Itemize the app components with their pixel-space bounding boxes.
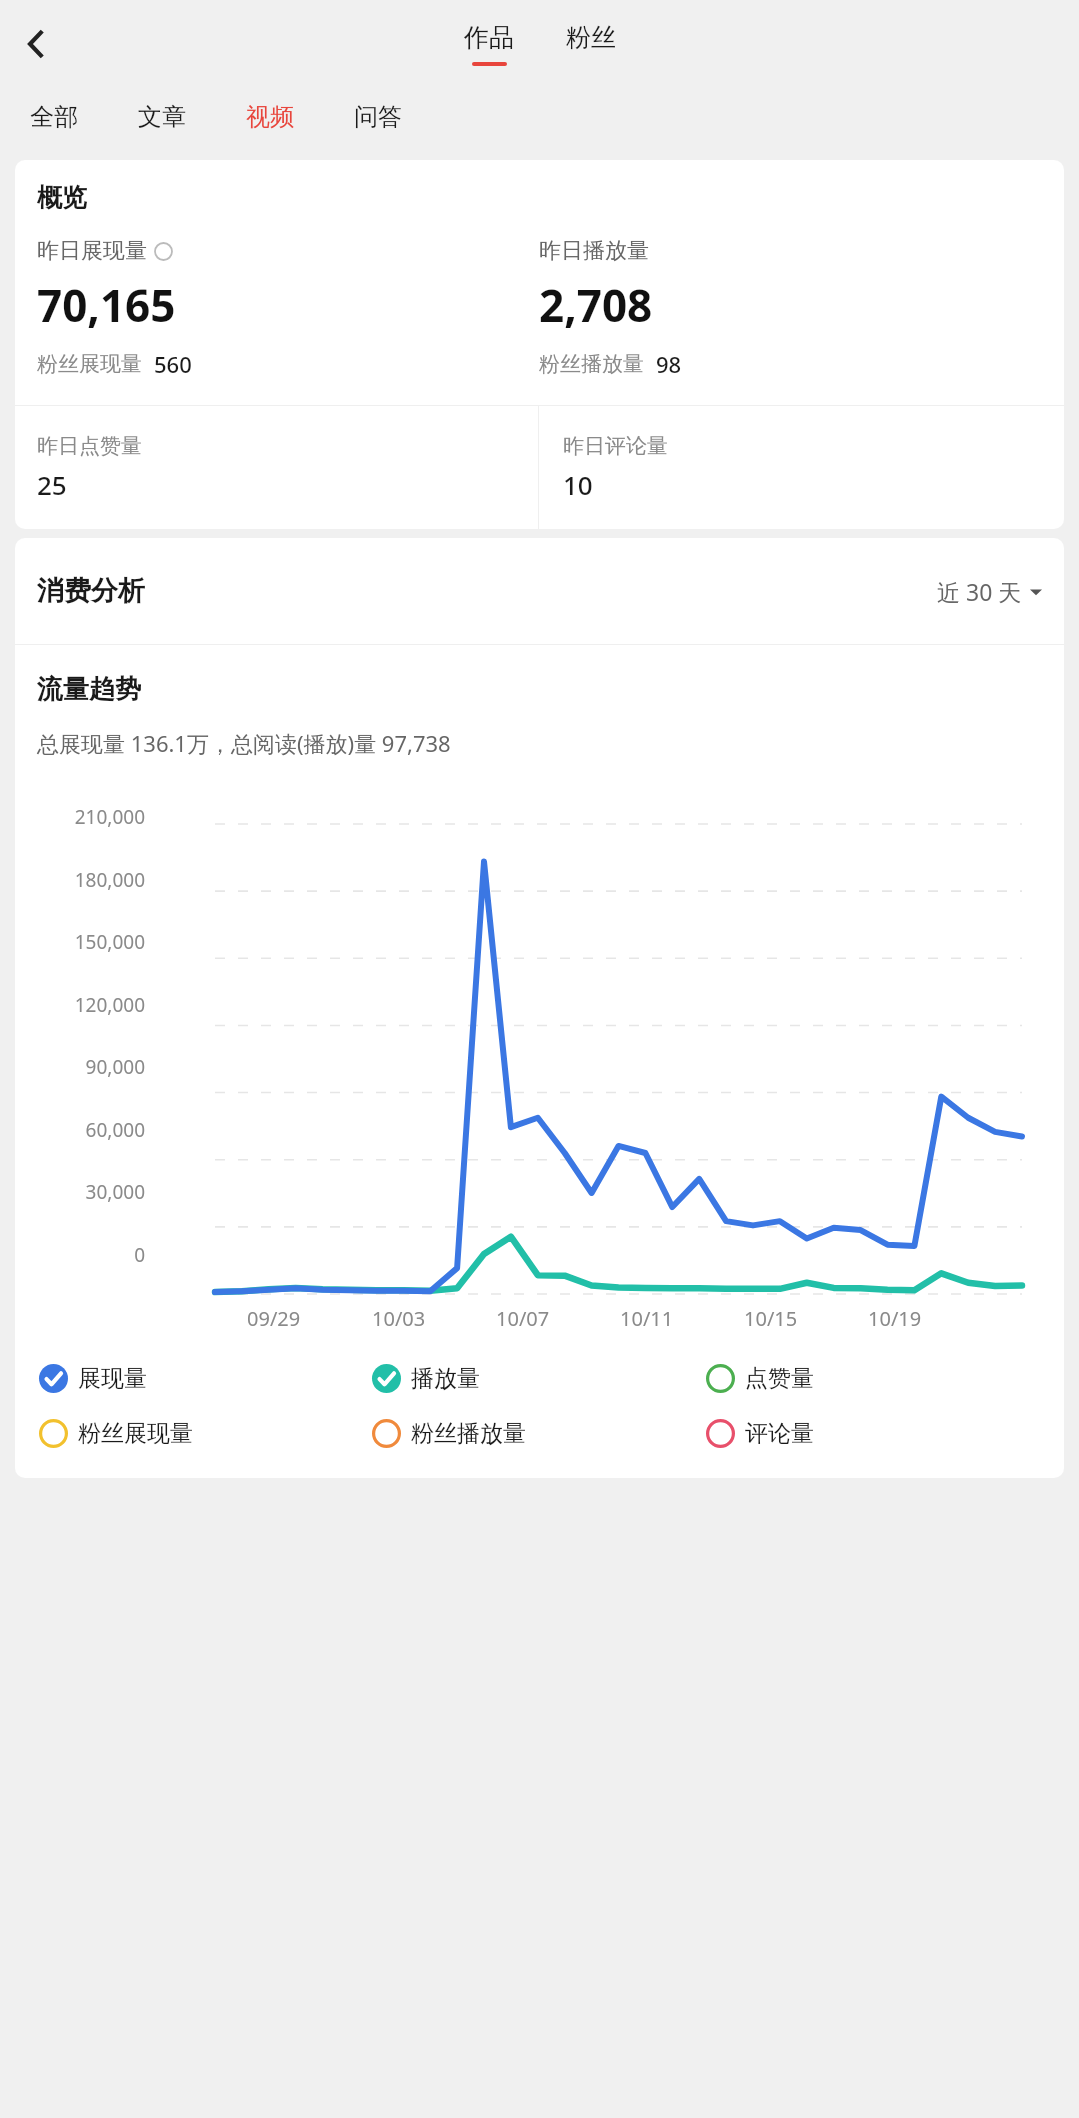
staticText: 10/11 <box>620 1305 674 1332</box>
staticText: 昨日点赞量 <box>37 433 142 459</box>
staticText: 粉丝播放量 <box>539 351 644 377</box>
button[interactable]: 粉丝展现量 <box>39 1419 372 1448</box>
staticText: 30,000 <box>85 1179 145 1205</box>
staticText: 10/07 <box>496 1305 550 1332</box>
staticText: 60,000 <box>85 1117 145 1143</box>
staticText: 10/15 <box>744 1305 798 1332</box>
staticText: 播放量 <box>411 1364 480 1393</box>
staticText: 90,000 <box>85 1054 145 1080</box>
staticText: 150,000 <box>74 929 145 955</box>
staticText: 180,000 <box>74 867 145 893</box>
button[interactable]: 播放量 <box>372 1364 706 1393</box>
staticText: 文章 <box>138 102 186 132</box>
staticText: 总展现量 136.1万，总阅读(播放)量 97,738 <box>37 728 451 758</box>
staticText: 昨日播放量 <box>539 237 649 265</box>
staticText: 10/19 <box>868 1305 922 1332</box>
staticText: 展现量 <box>78 1364 147 1393</box>
staticText: 概览 <box>37 182 87 213</box>
staticText: 2,708 <box>539 275 653 335</box>
button[interactable]: 全部 <box>26 96 82 138</box>
staticText: 10/03 <box>372 1305 426 1332</box>
staticText: 0 <box>134 1242 145 1268</box>
staticText: 流量趋势 <box>37 673 141 706</box>
button[interactable]: 问答 <box>350 96 406 138</box>
staticText: 70,165 <box>37 275 176 335</box>
staticText: 视频 <box>246 102 294 132</box>
staticText: 作品 <box>464 22 514 53</box>
staticText: 粉丝展现量 <box>78 1419 193 1448</box>
staticText: 全部 <box>30 102 78 132</box>
staticText: 25 <box>37 467 67 502</box>
button[interactable]: 粉丝 <box>556 22 626 66</box>
staticText: 粉丝播放量 <box>411 1419 526 1448</box>
button[interactable]: 展现量 <box>39 1364 372 1393</box>
staticText: 120,000 <box>74 992 145 1018</box>
button[interactable]: Back <box>6 14 66 74</box>
staticText: 消费分析 <box>37 574 145 608</box>
button[interactable]: 近 30 天 <box>937 576 1064 607</box>
button[interactable]: 点赞量 <box>706 1364 1040 1393</box>
button[interactable]: 粉丝播放量 <box>372 1419 706 1448</box>
staticText: 10 <box>563 467 593 502</box>
staticText: 粉丝展现量 <box>37 351 142 377</box>
staticText: 粉丝 <box>566 22 616 53</box>
button[interactable]: 视频 <box>242 96 298 138</box>
button[interactable]: 评论量 <box>706 1419 1040 1448</box>
staticText: 问答 <box>354 102 402 132</box>
staticText: 09/29 <box>247 1305 301 1332</box>
staticText: 210,000 <box>74 804 145 830</box>
button[interactable]: 作品 <box>454 22 524 66</box>
staticText: 昨日评论量 <box>563 433 668 459</box>
staticText: 评论量 <box>745 1419 814 1448</box>
staticText: 点赞量 <box>745 1364 814 1393</box>
staticText: 近 30 天 <box>937 576 1022 607</box>
staticText: 昨日展现量 <box>37 237 147 265</box>
button[interactable]: 文章 <box>134 96 190 138</box>
staticText: 560 <box>154 349 192 379</box>
staticText: 98 <box>656 349 682 379</box>
